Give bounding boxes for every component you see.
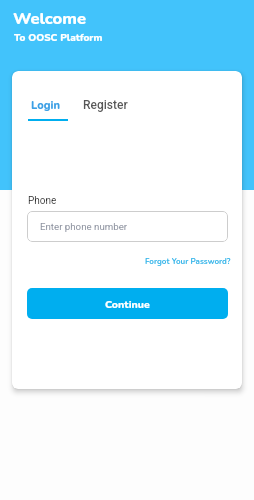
staticText: Enter phone number <box>40 221 128 232</box>
button[interactable]: Login <box>28 98 68 122</box>
staticText: Phone <box>28 195 57 207</box>
staticText: Welcome <box>13 7 87 30</box>
staticText: To OOSC Platform <box>14 31 103 45</box>
button[interactable]: Enter phone number <box>27 211 228 242</box>
staticText: Register <box>83 98 128 112</box>
button[interactable]: Register <box>83 98 128 112</box>
staticText: Login <box>31 98 60 113</box>
button[interactable]: Forgot Your Password? <box>145 256 231 267</box>
staticText: Forgot Your Password? <box>145 256 231 267</box>
staticText: Continue <box>105 297 150 311</box>
button[interactable]: Continue <box>27 288 228 319</box>
